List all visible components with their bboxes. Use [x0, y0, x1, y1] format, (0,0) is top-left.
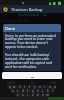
staticText: l [52, 89, 53, 93]
button[interactable]: x [20, 93, 25, 97]
staticText: s [17, 89, 19, 93]
staticText: system booted • ok [18, 13, 47, 17]
button[interactable]: l [50, 89, 55, 93]
button[interactable]: b [35, 93, 40, 97]
button[interactable]: m [45, 93, 50, 97]
button[interactable]: o [47, 85, 52, 89]
button[interactable]: y [32, 85, 37, 89]
staticText: u [39, 85, 41, 89]
staticText: q [9, 85, 11, 89]
button[interactable]: u [37, 85, 42, 89]
button[interactable]: z [15, 93, 20, 97]
staticText: Sorry, to perform an automated backup yo… [5, 33, 59, 70]
button[interactable]: e [17, 85, 22, 89]
staticText: Done [5, 26, 16, 31]
button[interactable] [2, 72, 62, 79]
staticText: m [46, 93, 49, 97]
button[interactable]: n [40, 93, 45, 97]
staticText: # titanium backup [2, 19, 30, 23]
staticText: f [27, 89, 29, 93]
button[interactable]: r [22, 85, 27, 89]
button[interactable]: Sorry, to perform an automated backup yo… [3, 32, 61, 71]
button[interactable]: d [20, 89, 25, 93]
button[interactable]: f [25, 89, 30, 93]
button[interactable]: k [45, 89, 50, 93]
button[interactable]: v [30, 93, 35, 97]
staticText: e [19, 85, 21, 89]
button[interactable]: h [35, 89, 40, 93]
staticText: b [37, 93, 39, 97]
button[interactable]: t [27, 85, 32, 89]
staticText: z [17, 93, 19, 97]
button[interactable]: i [42, 85, 47, 89]
staticText: n [42, 93, 44, 97]
staticText: y [34, 85, 36, 89]
button[interactable]: a [10, 89, 15, 93]
button[interactable]: q [7, 85, 12, 89]
staticText: j [42, 89, 43, 93]
staticText: d [22, 89, 24, 93]
staticText: c [27, 93, 29, 97]
staticText: r [24, 85, 26, 89]
button[interactable]: w [12, 85, 17, 89]
button[interactable]: To [22, 80, 43, 85]
staticText: g [32, 89, 34, 93]
button[interactable]: g [30, 89, 35, 93]
other: Status icons [49, 1, 62, 5]
staticText: Sorry [7, 81, 15, 85]
button[interactable]: s [15, 89, 20, 93]
button[interactable]: The [43, 80, 64, 85]
staticText: o [49, 85, 51, 89]
staticText: h [37, 89, 39, 93]
staticText: To [31, 81, 35, 85]
button[interactable]: Send [48, 97, 64, 100]
button[interactable]: Titanium Backup [0, 5, 64, 13]
button[interactable]: Done [3, 24, 61, 32]
staticText: t [29, 85, 31, 89]
button[interactable]: c [25, 93, 30, 97]
staticText: w [13, 85, 16, 89]
staticText: i [44, 85, 45, 89]
staticText: p [54, 85, 56, 89]
button[interactable]: j [40, 89, 45, 93]
staticText: k [47, 89, 49, 93]
button[interactable]: p [52, 85, 57, 89]
staticText: Titanium Backup [11, 7, 43, 12]
staticText: a [12, 89, 14, 93]
staticText: The [51, 81, 57, 85]
staticText: v [32, 93, 34, 97]
staticText: x [22, 93, 24, 97]
button[interactable]: Sorry [0, 80, 22, 85]
